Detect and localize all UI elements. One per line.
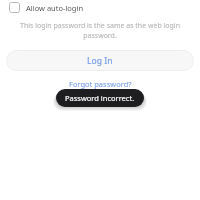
button[interactable]: Password incorrect notification [56, 89, 144, 107]
staticText: This login password is the same as the w… [6, 21, 194, 41]
button[interactable]: Log In [6, 50, 194, 71]
button[interactable]: Allow auto-login [9, 1, 90, 14]
staticText: Log In [87, 55, 113, 67]
staticText: Allow auto-login [26, 3, 84, 13]
button[interactable]: Forgot password? [63, 77, 138, 91]
staticText: Password incorrect. [65, 93, 135, 103]
